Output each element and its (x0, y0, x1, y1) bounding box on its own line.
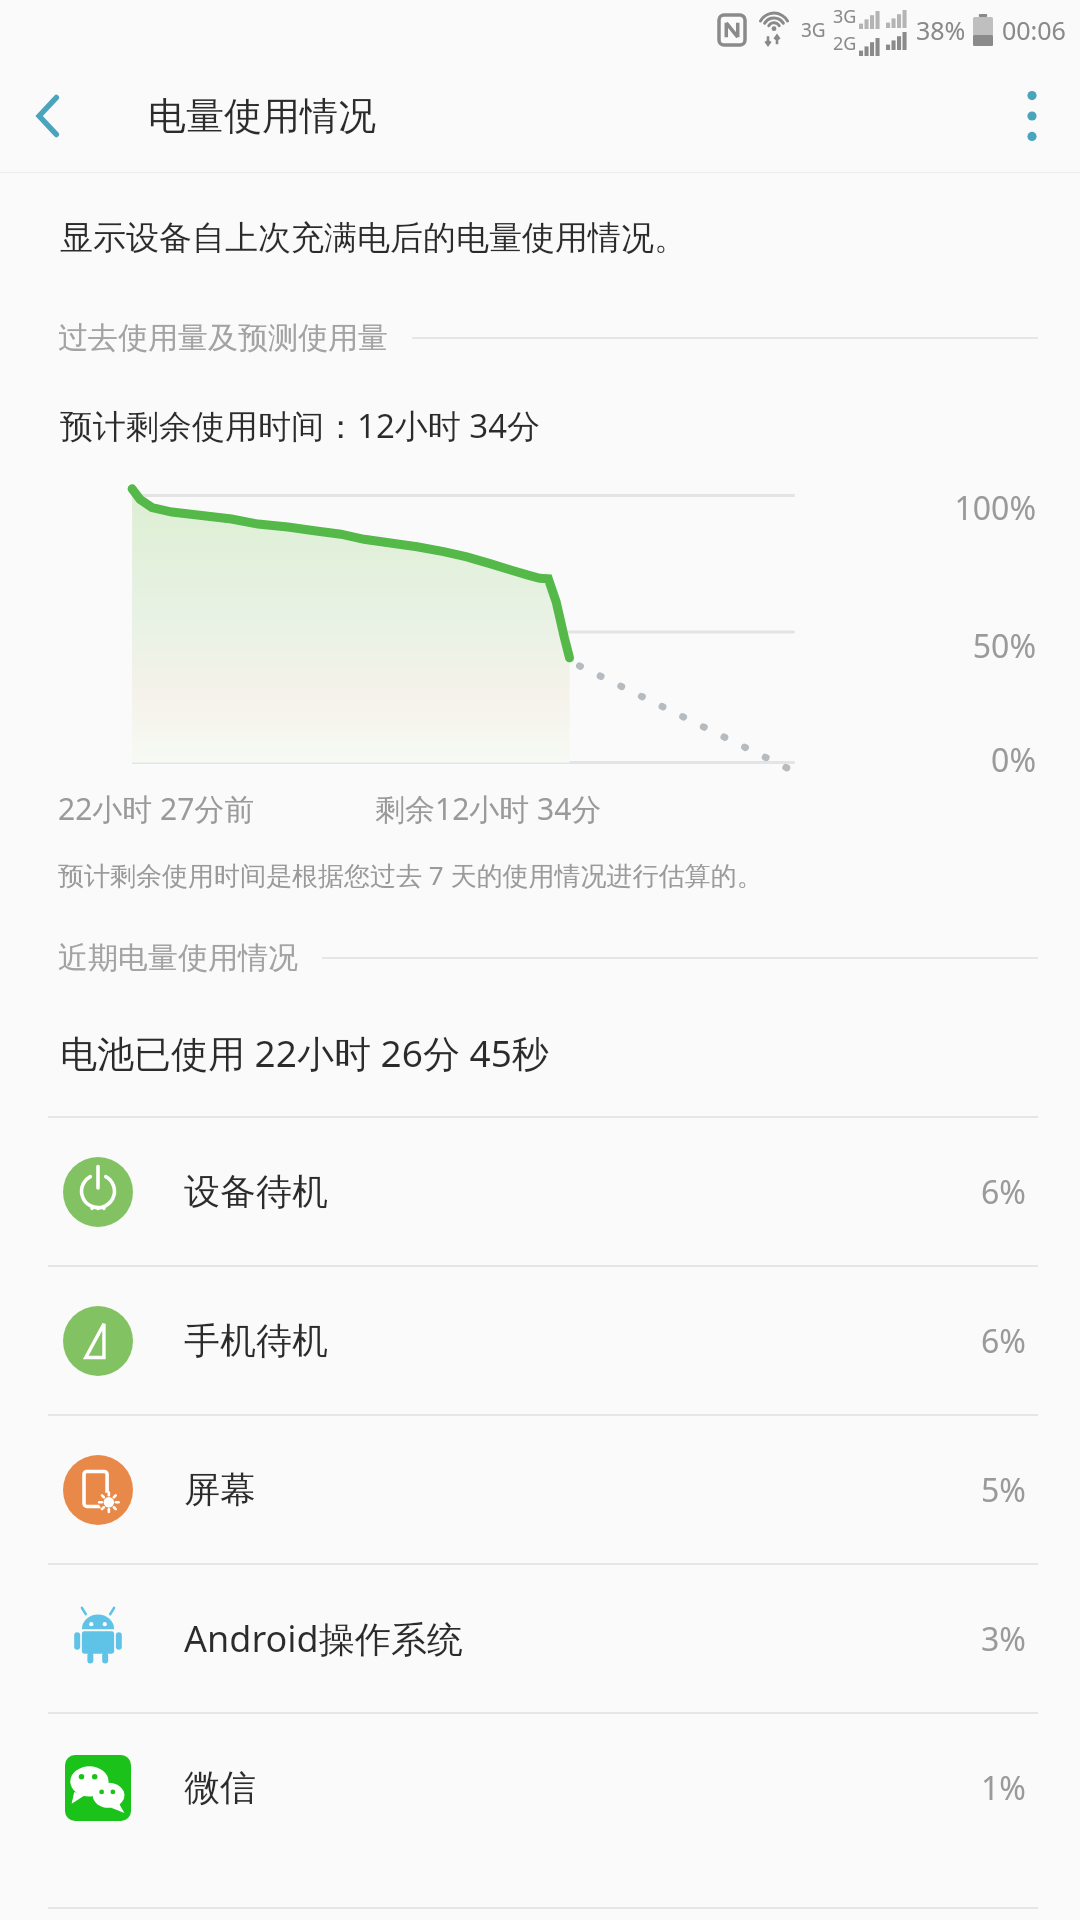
staticText: 00:06 (1002, 13, 1066, 47)
staticText: 设备待机 (184, 1169, 981, 1214)
staticText: 显示设备自上次充满电后的电量使用情况。 (60, 217, 687, 259)
button[interactable]: Back (0, 60, 96, 172)
staticText: 电量使用情况 (148, 92, 376, 140)
staticText: 3% (981, 1617, 1026, 1661)
staticText: 过去使用量及预测使用量 (58, 319, 388, 357)
staticText: 1% (981, 1766, 1026, 1810)
staticText: 50% (972, 624, 1036, 668)
staticText: 6% (981, 1170, 1026, 1214)
staticText: 预计剩余使用时间是根据您过去 7 天的使用情况进行估算的。 (58, 857, 763, 893)
button[interactable]: 设备待机 (0, 1118, 1080, 1265)
staticText: 3G (801, 17, 826, 43)
button[interactable]: 手机待机 (0, 1267, 1080, 1414)
staticText: 屏幕 (184, 1467, 981, 1512)
staticText: 22小时 27分前 (58, 788, 255, 829)
staticText: 剩余12小时 34分 (375, 788, 602, 829)
button[interactable]: More options (984, 60, 1080, 172)
button[interactable]: Android操作系统 (0, 1565, 1080, 1712)
staticText: 手机待机 (184, 1318, 981, 1363)
button[interactable]: 屏幕 (0, 1416, 1080, 1563)
staticText: 38% (916, 13, 966, 47)
staticText: 0% (991, 738, 1036, 782)
staticText: 预计剩余使用时间：12小时 34分 (60, 403, 541, 448)
staticText: 电池已使用 22小时 26分 45秒 (60, 1027, 549, 1078)
button[interactable]: 微信 (0, 1714, 1080, 1861)
staticText: 6% (981, 1319, 1026, 1363)
staticText: Android操作系统 (184, 1614, 981, 1663)
staticText: 近期电量使用情况 (58, 939, 298, 977)
staticText: 2G (833, 31, 857, 56)
staticText: 100% (954, 486, 1036, 530)
staticText: 微信 (184, 1765, 981, 1810)
staticText: 5% (981, 1468, 1026, 1512)
staticText: 3G (833, 4, 857, 29)
